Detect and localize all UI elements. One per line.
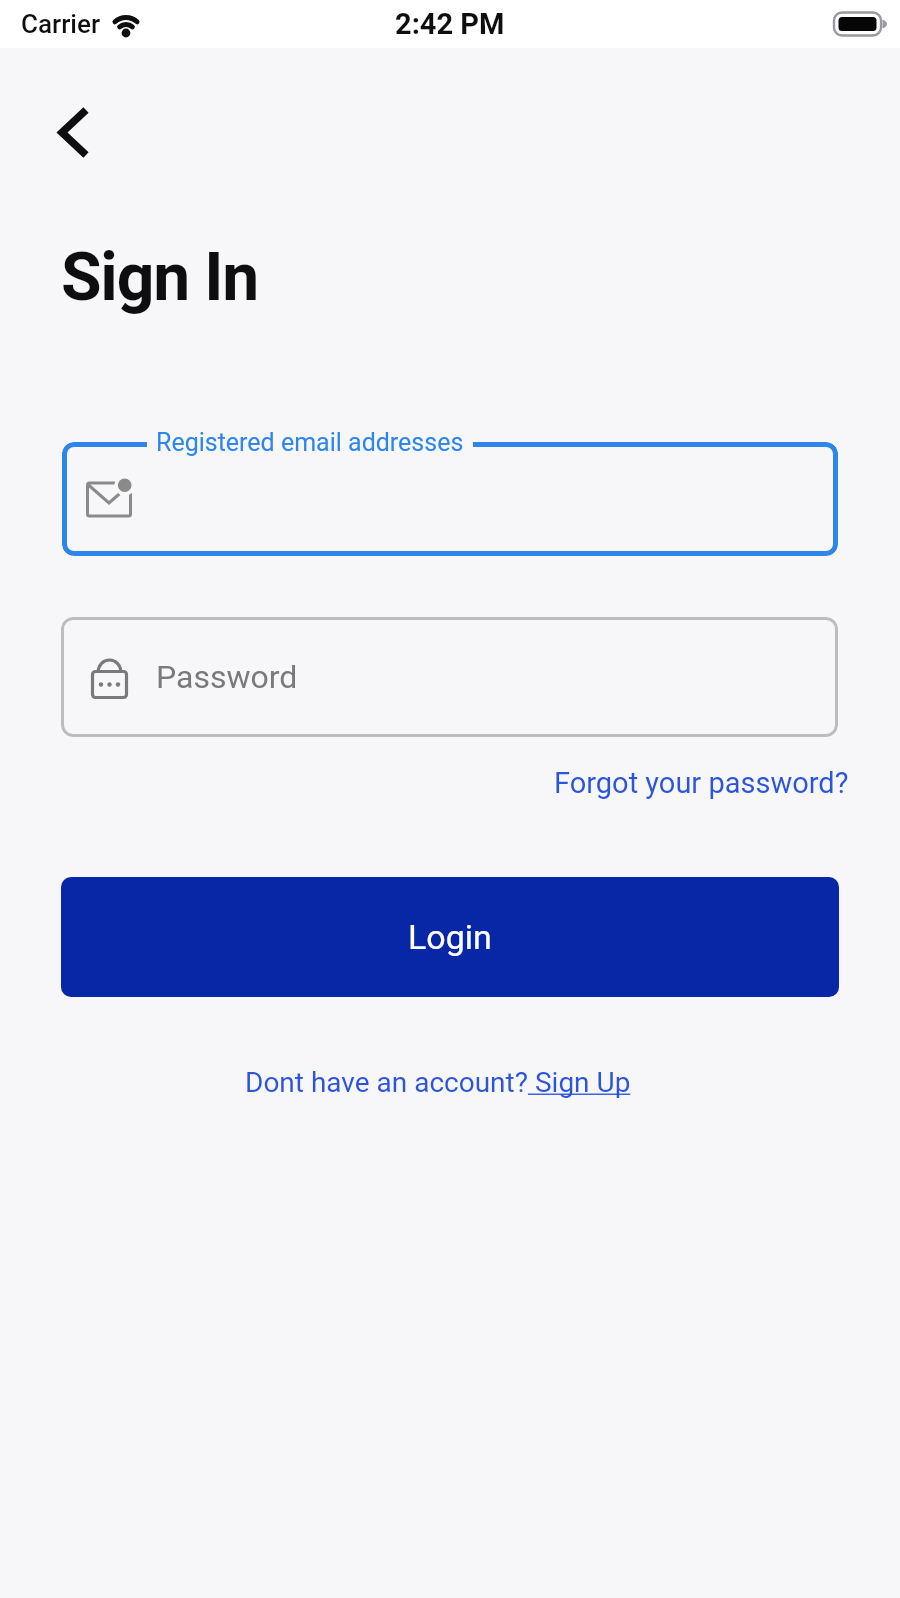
staticText: 2:42 PM bbox=[395, 7, 505, 41]
staticText: Dont have an account? bbox=[245, 1066, 528, 1099]
button[interactable]: Dont have an account? bbox=[0, 1066, 888, 1099]
staticText: Login bbox=[408, 917, 492, 957]
staticText: Sign Up bbox=[528, 1066, 631, 1099]
button[interactable]: Password bbox=[61, 617, 838, 737]
button[interactable]: Forgot your password? bbox=[554, 766, 849, 800]
button[interactable] bbox=[44, 96, 108, 160]
staticText: Registered email addresses bbox=[156, 428, 464, 457]
staticText: Password bbox=[156, 658, 298, 696]
button[interactable]: Login bbox=[61, 877, 839, 997]
button[interactable] bbox=[62, 442, 838, 556]
staticText: Sign In bbox=[61, 239, 259, 316]
staticText: Carrier bbox=[21, 9, 101, 39]
